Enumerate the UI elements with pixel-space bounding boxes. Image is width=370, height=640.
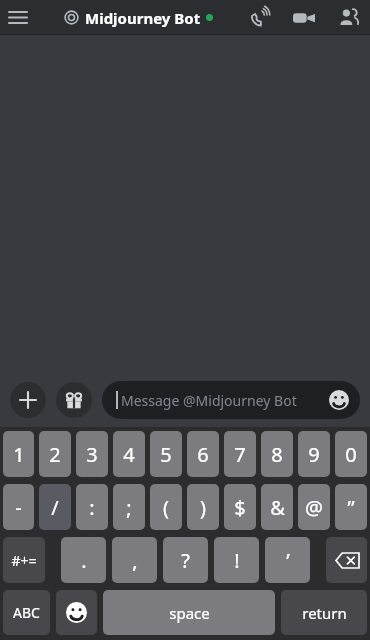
button[interactable]: 3: [76, 431, 108, 477]
staticText: @: [305, 494, 323, 521]
staticText: /: [51, 494, 59, 521]
button[interactable]: space: [103, 590, 275, 635]
button[interactable]: #+=: [3, 537, 45, 583]
staticText: #+=: [11, 551, 37, 570]
button[interactable]: 6: [187, 431, 219, 477]
button[interactable]: @: [298, 484, 330, 530]
button[interactable]: Video call: [282, 0, 326, 35]
button[interactable]: Emoji: [328, 389, 350, 411]
button[interactable]: -: [3, 484, 34, 530]
staticText: 8: [271, 441, 283, 468]
staticText: 1: [13, 441, 25, 468]
button[interactable]: Message @Midjourney Bot: [102, 381, 360, 419]
staticText: -: [15, 494, 22, 521]
button[interactable]: Emoji keyboard: [56, 590, 97, 635]
staticText: Message @Midjourney Bot: [121, 391, 297, 410]
button[interactable]: 7: [224, 431, 256, 477]
button[interactable]: ABC: [3, 590, 50, 635]
button[interactable]: Voice call: [238, 0, 282, 35]
staticText: :: [89, 494, 95, 521]
staticText: ’: [286, 547, 290, 574]
button[interactable]: 1: [3, 431, 34, 477]
staticText: 6: [197, 441, 209, 468]
staticText: 4: [123, 441, 135, 468]
staticText: ABC: [13, 603, 40, 622]
button[interactable]: ,: [112, 537, 157, 583]
button[interactable]: 8: [261, 431, 293, 477]
staticText: ?: [181, 547, 190, 574]
button[interactable]: ): [187, 484, 219, 530]
staticText: 2: [49, 441, 61, 468]
button[interactable]: &: [261, 484, 293, 530]
staticText: 3: [86, 441, 98, 468]
button[interactable]: 4: [113, 431, 145, 477]
button[interactable]: /: [39, 484, 71, 530]
button[interactable]: Send a gift: [56, 382, 92, 418]
button[interactable]: 2: [39, 431, 71, 477]
button[interactable]: 9: [298, 431, 330, 477]
button[interactable]: Backspace: [326, 537, 367, 583]
staticText: ): [200, 494, 206, 521]
button[interactable]: 5: [150, 431, 182, 477]
staticText: return: [302, 603, 347, 623]
staticText: Midjourney Bot: [85, 8, 201, 28]
button[interactable]: 0: [335, 431, 367, 477]
staticText: ;: [126, 494, 132, 521]
button[interactable]: $: [224, 484, 256, 530]
staticText: &: [270, 494, 285, 521]
staticText: ,: [132, 547, 138, 574]
button[interactable]: ”: [335, 484, 367, 530]
staticText: !: [234, 547, 240, 574]
staticText: ”: [347, 494, 355, 521]
button[interactable]: :: [76, 484, 108, 530]
button[interactable]: Members: [326, 0, 370, 35]
button[interactable]: ?: [163, 537, 208, 583]
button[interactable]: !: [214, 537, 259, 583]
button[interactable]: .: [61, 537, 106, 583]
staticText: 0: [345, 441, 357, 468]
button[interactable]: (: [150, 484, 182, 530]
staticText: (: [163, 494, 169, 521]
button[interactable]: Add attachment: [10, 382, 46, 418]
button[interactable]: ;: [113, 484, 145, 530]
staticText: space: [169, 603, 210, 623]
staticText: 7: [234, 441, 246, 468]
button[interactable]: ’: [265, 537, 310, 583]
staticText: $: [234, 494, 246, 521]
staticText: 9: [308, 441, 320, 468]
button[interactable]: return: [281, 590, 367, 635]
button[interactable]: Menu: [0, 0, 36, 35]
staticText: .: [81, 547, 87, 574]
staticText: 5: [160, 441, 172, 468]
